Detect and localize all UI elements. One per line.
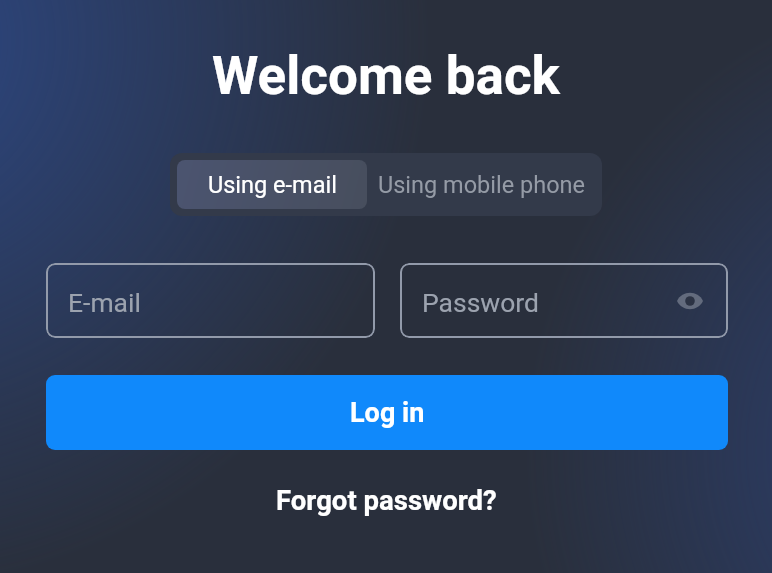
staticText: Using mobile phone bbox=[378, 171, 585, 199]
staticText: Using e-mail bbox=[208, 171, 337, 199]
button[interactable]: Forgot password? bbox=[270, 482, 503, 518]
button[interactable]: Using e-mail bbox=[177, 160, 367, 209]
staticText: Forgot password? bbox=[276, 484, 497, 516]
staticText: E-mail bbox=[68, 287, 141, 318]
button[interactable]: Password bbox=[400, 263, 728, 338]
button[interactable]: E-mail bbox=[46, 263, 375, 338]
staticText: Welcome back bbox=[212, 45, 560, 107]
button[interactable]: Using mobile phone bbox=[367, 160, 595, 209]
staticText: Log in bbox=[350, 397, 425, 429]
button[interactable]: Log in bbox=[46, 375, 728, 450]
staticText: Password bbox=[422, 287, 540, 318]
button[interactable]: Show password bbox=[672, 283, 708, 319]
